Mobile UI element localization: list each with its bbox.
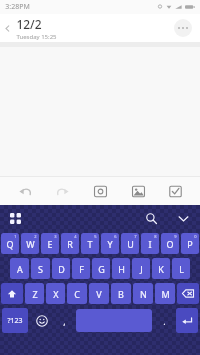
staticText: I xyxy=(148,238,152,250)
staticText: Q xyxy=(6,238,14,250)
staticText: G xyxy=(98,263,105,275)
staticText: 1 xyxy=(14,234,17,239)
staticText: R xyxy=(67,238,73,250)
button[interactable]: Insert image xyxy=(125,178,151,204)
button[interactable]: ?123 xyxy=(2,308,28,333)
staticText: V xyxy=(96,288,102,300)
button[interactable]: E xyxy=(41,233,59,254)
button[interactable]: . xyxy=(156,308,172,333)
staticText: Z xyxy=(32,288,38,300)
staticText: 3:28PM xyxy=(5,2,30,12)
button[interactable]: C xyxy=(67,283,87,304)
staticText: U xyxy=(127,238,134,250)
button[interactable]: B xyxy=(111,283,131,304)
button[interactable]: F xyxy=(72,258,90,279)
staticText: B xyxy=(118,288,124,300)
button[interactable]: Y xyxy=(101,233,119,254)
button[interactable]: Redo xyxy=(49,178,75,204)
button[interactable]: R xyxy=(61,233,79,254)
button[interactable]: Q xyxy=(1,233,19,254)
button[interactable]: Checklist xyxy=(162,178,188,204)
staticText: 7 xyxy=(134,234,137,239)
button[interactable]: Space xyxy=(76,309,152,332)
staticText: C xyxy=(74,288,80,300)
staticText: W xyxy=(26,238,35,250)
staticText: 12/2 xyxy=(16,16,42,32)
staticText: Y xyxy=(107,238,113,250)
button[interactable]: Emoji xyxy=(32,308,52,333)
button[interactable]: H xyxy=(112,258,130,279)
staticText: 3 xyxy=(54,234,57,239)
staticText: 5 xyxy=(94,234,97,239)
button[interactable]: Camera xyxy=(87,178,113,204)
staticText: Tuesday 15:25 xyxy=(16,33,57,41)
staticText: K xyxy=(158,263,164,275)
button[interactable]: Z xyxy=(25,283,44,304)
staticText: N xyxy=(140,288,147,300)
staticText: H xyxy=(118,263,125,275)
button[interactable]: L xyxy=(172,258,190,279)
staticText: , xyxy=(63,315,66,327)
staticText: P xyxy=(187,238,193,250)
staticText: L xyxy=(179,263,184,275)
button[interactable]: S xyxy=(31,258,50,279)
button[interactable]: , xyxy=(56,308,72,333)
button[interactable]: Hide keyboard xyxy=(174,209,192,227)
staticText: X xyxy=(53,288,59,300)
button[interactable]: U xyxy=(121,233,139,254)
button[interactable]: Shift xyxy=(1,283,23,304)
staticText: S xyxy=(38,263,43,275)
button[interactable]: I xyxy=(141,233,159,254)
staticText: 2 xyxy=(34,234,37,239)
button[interactable]: A xyxy=(10,258,29,279)
button[interactable]: J xyxy=(132,258,150,279)
staticText: T xyxy=(87,238,93,250)
button[interactable]: D xyxy=(52,258,70,279)
staticText: 9 xyxy=(174,234,177,239)
staticText: 4 xyxy=(74,234,77,239)
staticText: ?123 xyxy=(7,316,23,326)
staticText: 0 xyxy=(194,234,197,239)
button[interactable]: M xyxy=(155,283,175,304)
staticText: O xyxy=(166,238,174,250)
button[interactable]: Keyboard menu xyxy=(6,209,24,227)
staticText: E xyxy=(47,238,53,250)
staticText: F xyxy=(79,263,84,275)
button[interactable]: T xyxy=(81,233,99,254)
staticText: M xyxy=(161,288,170,300)
button[interactable]: More options xyxy=(174,19,192,37)
button[interactable]: X xyxy=(46,283,65,304)
button[interactable]: Enter xyxy=(176,308,198,333)
button[interactable]: G xyxy=(92,258,110,279)
button[interactable]: Search xyxy=(142,209,160,227)
button[interactable]: Backspace xyxy=(177,283,199,304)
button[interactable]: N xyxy=(133,283,153,304)
staticText: J xyxy=(140,263,143,275)
staticText: . xyxy=(163,315,166,327)
button[interactable]: K xyxy=(152,258,170,279)
button[interactable]: O xyxy=(161,233,179,254)
button[interactable]: Undo xyxy=(12,178,38,204)
button[interactable]: P xyxy=(181,233,199,254)
button[interactable]: V xyxy=(89,283,109,304)
staticText: 6 xyxy=(114,234,117,239)
staticText: D xyxy=(58,263,65,275)
staticText: 8 xyxy=(154,234,157,239)
button[interactable]: Back xyxy=(0,21,14,35)
button[interactable]: W xyxy=(21,233,39,254)
staticText: A xyxy=(17,263,23,275)
